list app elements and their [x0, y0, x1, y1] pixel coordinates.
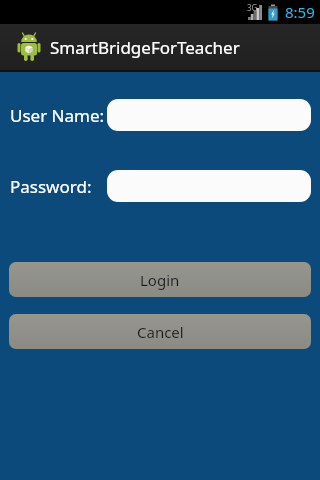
staticText: Password: — [10, 175, 92, 198]
staticText: 3G — [247, 2, 258, 13]
staticText: 8:59 — [285, 2, 315, 22]
button[interactable]: Cancel — [9, 314, 311, 349]
button[interactable]: Login — [9, 262, 311, 297]
staticText: Login — [140, 270, 180, 290]
staticText: Cancel — [137, 322, 184, 342]
staticText: SmartBridgeForTeacher — [50, 36, 240, 59]
button[interactable] — [107, 99, 311, 131]
button[interactable] — [107, 170, 311, 202]
staticText: User Name: — [10, 104, 105, 127]
